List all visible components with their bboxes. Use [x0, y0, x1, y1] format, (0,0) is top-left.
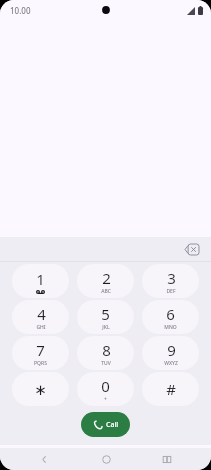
staticText: 9 — [167, 340, 176, 360]
staticText: 8 — [102, 340, 111, 360]
staticText: ∗ — [34, 381, 47, 398]
staticText: JKL — [102, 324, 110, 331]
staticText: 2 — [102, 268, 111, 288]
button[interactable]: 1 — [12, 264, 69, 298]
button[interactable]: 2 — [77, 264, 134, 298]
staticText: 0 — [101, 376, 110, 396]
staticText: 3 — [167, 268, 176, 288]
staticText: # — [166, 379, 176, 399]
staticText: Call — [106, 420, 119, 430]
staticText: 4 — [37, 304, 46, 324]
staticText: TUV — [101, 360, 111, 367]
button[interactable]: 0 — [77, 372, 134, 406]
staticText: 6 — [166, 304, 175, 324]
button[interactable]: 5 — [77, 300, 134, 334]
staticText: DEF — [166, 288, 176, 295]
button[interactable]: ∗ — [12, 372, 69, 406]
staticText: 5 — [101, 304, 110, 324]
button[interactable]: 3 — [142, 264, 199, 298]
button[interactable]: Call — [81, 412, 130, 437]
button[interactable]: 4 — [12, 300, 69, 334]
button[interactable]: 7 — [12, 336, 69, 370]
button[interactable]: Recent apps — [150, 448, 184, 470]
button[interactable]: 6 — [142, 300, 199, 334]
staticText: GHI — [36, 324, 46, 331]
button[interactable]: # — [142, 372, 199, 406]
button[interactable]: Backspace — [181, 240, 203, 258]
button[interactable]: Home — [89, 448, 123, 470]
staticText: PQRS — [34, 360, 47, 367]
staticText: + — [104, 396, 107, 403]
staticText: 1 — [36, 269, 45, 289]
staticText: 10.00 — [10, 5, 31, 16]
button[interactable]: 8 — [77, 336, 134, 370]
staticText: WXYZ — [164, 360, 178, 367]
staticText: MNO — [164, 324, 177, 331]
button[interactable]: 9 — [142, 336, 199, 370]
staticText: ABC — [101, 288, 111, 295]
button[interactable]: Back — [27, 448, 61, 470]
staticText: 7 — [36, 340, 45, 360]
